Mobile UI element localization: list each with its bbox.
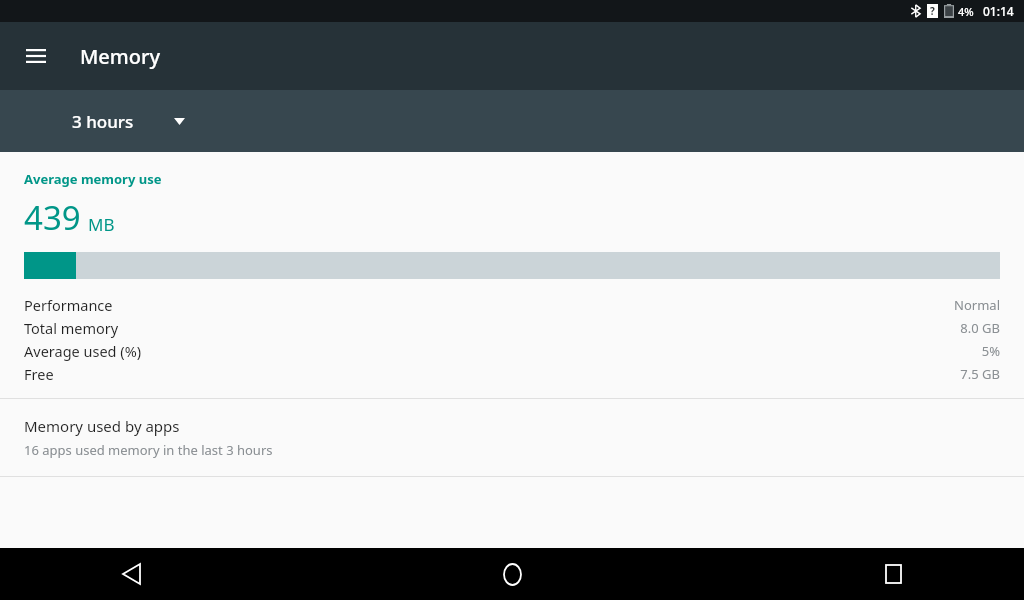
staticText: Total memory xyxy=(24,318,119,338)
staticText: 01:14 xyxy=(983,3,1014,19)
button[interactable]: Open navigation drawer xyxy=(12,32,60,80)
staticText: Free xyxy=(24,364,54,384)
staticText: ? xyxy=(930,4,935,18)
staticText: 7.5 GB xyxy=(960,365,1000,383)
button[interactable]: 3 hours xyxy=(60,102,197,141)
staticText: Memory used by apps xyxy=(24,416,180,436)
staticText: 4% xyxy=(958,4,974,19)
staticText: 16 apps used memory in the last 3 hours xyxy=(24,441,273,459)
staticText: Memory xyxy=(80,43,161,70)
staticText: Average used (%) xyxy=(24,341,142,361)
staticText: 3 hours xyxy=(72,110,134,133)
button[interactable]: Back xyxy=(107,550,155,598)
staticText: MB xyxy=(88,213,115,236)
button[interactable]: Home xyxy=(488,550,536,598)
staticText: 439 xyxy=(24,195,81,240)
staticText: 8.0 GB xyxy=(960,319,1000,337)
staticText: Average memory use xyxy=(24,170,162,188)
button[interactable]: Recent apps xyxy=(869,550,917,598)
staticText: Normal xyxy=(954,296,1000,314)
staticText: 5% xyxy=(981,342,1000,360)
button[interactable]: Memory used by apps xyxy=(0,399,1024,476)
staticText: Performance xyxy=(24,295,113,315)
